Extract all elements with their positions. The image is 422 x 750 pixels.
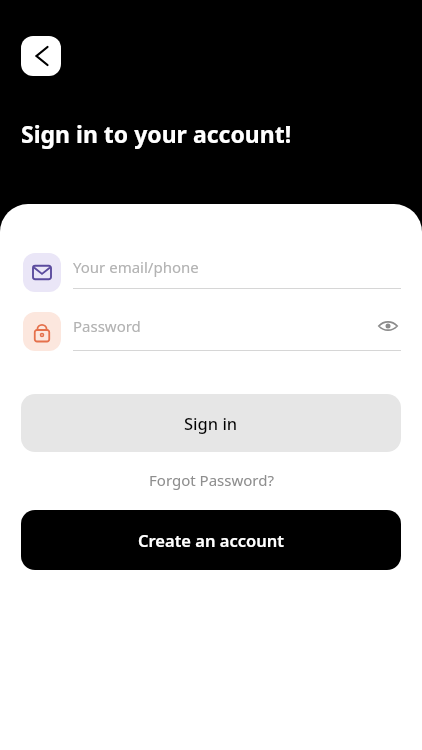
staticText: Create an account <box>138 529 284 551</box>
staticText: Sign in <box>184 412 238 434</box>
button[interactable]: Your email/phone <box>23 253 401 292</box>
staticText: Your email/phone <box>73 257 199 277</box>
button[interactable]: Sign in <box>21 394 401 452</box>
button[interactable]: Back <box>21 36 61 76</box>
staticText: Password <box>73 316 141 336</box>
staticText: Forgot Password? <box>149 470 274 490</box>
staticText: Sign in to your account! <box>21 118 292 149</box>
button[interactable]: Forgot Password? <box>0 470 422 490</box>
button[interactable]: Show password <box>375 313 401 339</box>
button[interactable]: Password <box>23 312 401 351</box>
button[interactable]: Create an account <box>21 510 401 570</box>
